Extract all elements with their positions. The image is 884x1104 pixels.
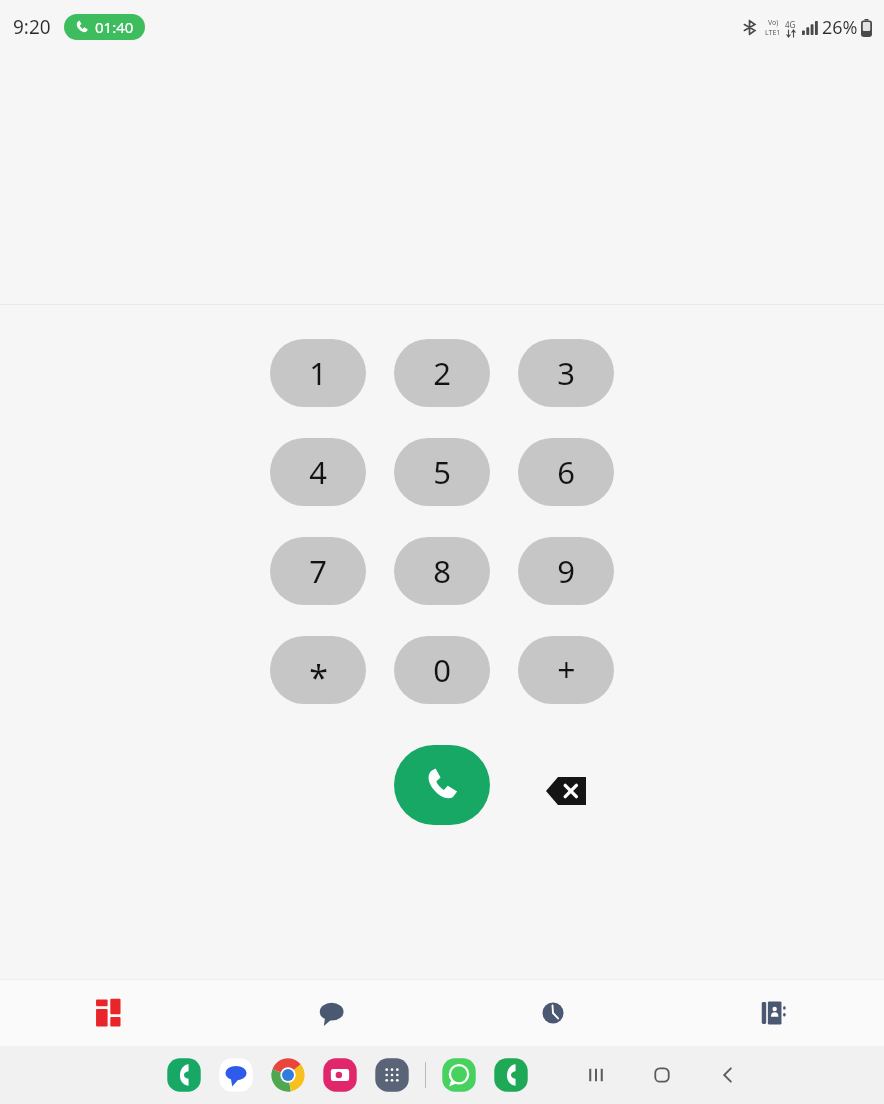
button[interactable]: Recents: [442, 980, 663, 1046]
button[interactable]: Instagram: [319, 1054, 361, 1096]
button[interactable]: 3: [518, 339, 614, 407]
staticText: 01:40: [95, 17, 134, 37]
staticText: 26%: [822, 15, 858, 40]
staticText: 6: [557, 451, 575, 493]
button[interactable]: 8: [394, 537, 490, 605]
staticText: 4: [309, 451, 327, 493]
button[interactable]: Phone: [163, 1054, 205, 1096]
button[interactable]: 5: [394, 438, 490, 506]
button[interactable]: 2: [394, 339, 490, 407]
button[interactable]: 4: [270, 438, 366, 506]
button[interactable]: Chrome: [267, 1054, 309, 1096]
staticText: 5: [433, 451, 451, 493]
staticText: Vo): [768, 18, 779, 28]
staticText: 3: [557, 352, 575, 394]
staticText: 8: [433, 550, 451, 592]
staticText: 9: [557, 550, 575, 592]
staticText: 1: [309, 352, 327, 394]
button[interactable]: Phone: [490, 1054, 532, 1096]
button[interactable]: *: [270, 636, 366, 704]
button[interactable]: 1: [270, 339, 366, 407]
button[interactable]: Backspace: [542, 771, 590, 811]
button[interactable]: Messages: [215, 1054, 257, 1096]
staticText: +: [557, 648, 576, 692]
button[interactable]: 01:40: [64, 14, 145, 40]
button[interactable]: Messages: [221, 980, 442, 1046]
button[interactable]: Back: [708, 1055, 748, 1095]
staticText: *: [309, 654, 328, 700]
button[interactable]: Apps: [371, 1054, 413, 1096]
button[interactable]: WhatsApp Business: [438, 1054, 480, 1096]
button[interactable]: +: [518, 636, 614, 704]
button[interactable]: Home: [642, 1055, 682, 1095]
button[interactable]: 0: [394, 636, 490, 704]
staticText: 2: [433, 352, 451, 394]
staticText: 7: [309, 550, 327, 592]
staticText: 4G: [785, 19, 796, 30]
button[interactable]: 7: [270, 537, 366, 605]
button[interactable]: 6: [518, 438, 614, 506]
button[interactable]: Contacts: [663, 980, 884, 1046]
button[interactable]: Call: [394, 745, 490, 825]
button[interactable]: Keypad: [0, 980, 221, 1046]
button[interactable]: 9: [518, 537, 614, 605]
staticText: LTE1: [765, 28, 781, 38]
staticText: 9:20: [13, 14, 51, 40]
staticText: 0: [433, 649, 451, 691]
button[interactable]: Recents: [576, 1055, 616, 1095]
